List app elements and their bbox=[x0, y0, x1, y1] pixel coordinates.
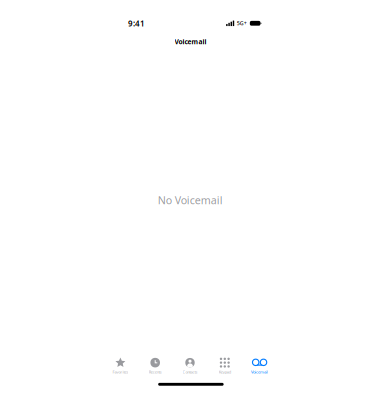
staticText: No Voicemail bbox=[158, 193, 223, 207]
staticText: Contacts bbox=[182, 369, 197, 374]
button[interactable]: Recents bbox=[138, 355, 173, 377]
staticText: Keypad bbox=[219, 369, 231, 374]
button[interactable]: Voicemail bbox=[242, 355, 277, 377]
staticText: 5G+ bbox=[237, 20, 247, 27]
staticText: Voicemail bbox=[251, 369, 268, 374]
staticText: 9:41 bbox=[128, 18, 145, 29]
button[interactable]: Keypad bbox=[207, 355, 242, 377]
staticText: Recents bbox=[149, 369, 162, 374]
staticText: Voicemail bbox=[174, 37, 206, 46]
staticText: Favorites bbox=[112, 369, 128, 374]
button[interactable]: Favorites bbox=[103, 355, 138, 377]
button[interactable]: Contacts bbox=[173, 355, 207, 377]
